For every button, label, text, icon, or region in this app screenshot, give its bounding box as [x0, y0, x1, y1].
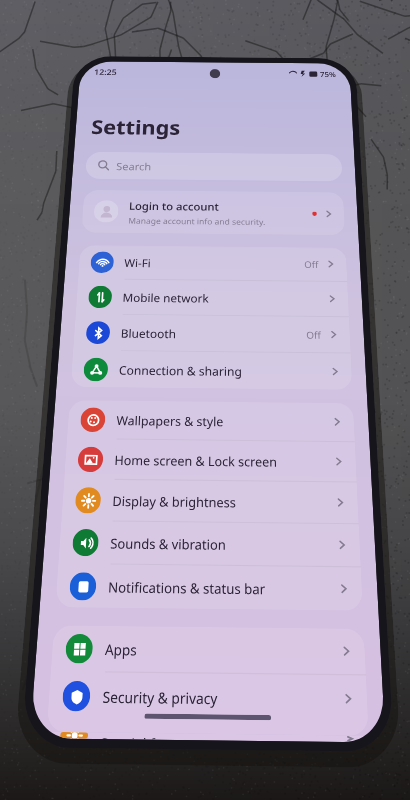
button[interactable]: Search: [85, 152, 343, 181]
staticText: Display & brightness: [112, 492, 237, 511]
staticText: Home screen & Lock screen: [114, 451, 278, 470]
button[interactable]: Login to account: [81, 190, 345, 235]
staticText: Off: [304, 258, 319, 271]
staticText: Manage account info and security.: [128, 215, 266, 227]
button[interactable]: Security & privacy: [47, 672, 368, 723]
staticText: Settings: [90, 113, 181, 140]
staticText: Off: [306, 328, 321, 342]
staticText: Wi-Fi: [124, 255, 151, 270]
button[interactable]: Home screen & Lock screen: [64, 439, 357, 481]
staticText: Special features: [101, 732, 205, 740]
staticText: Login to account: [129, 199, 219, 213]
staticText: 12:25: [94, 66, 117, 77]
staticText: 75%: [320, 69, 336, 78]
button[interactable]: Notifications & status bar: [55, 564, 363, 611]
button[interactable]: Wi-Fi: [78, 245, 347, 281]
button[interactable]: Apps: [51, 625, 366, 674]
staticText: Mobile network: [122, 290, 210, 305]
staticText: Bluetooth: [120, 325, 177, 341]
staticText: Apps: [105, 639, 138, 659]
staticText: Wallpapers & style: [116, 412, 223, 429]
button[interactable]: Sounds & vibration: [58, 521, 361, 566]
staticText: Sounds & vibration: [110, 534, 226, 553]
staticText: Search: [116, 159, 151, 173]
staticText: Connection & sharing: [119, 362, 243, 379]
button[interactable]: Connection & sharing: [70, 351, 352, 390]
button[interactable]: Wallpapers & style: [67, 400, 355, 441]
staticText: Security & privacy: [102, 686, 218, 708]
button[interactable]: Mobile network: [76, 279, 349, 316]
button[interactable]: Display & brightness: [61, 479, 359, 523]
button[interactable]: Bluetooth: [73, 314, 351, 352]
button[interactable]: Special features: [46, 732, 369, 742]
staticText: Notifications & status bar: [108, 577, 265, 598]
